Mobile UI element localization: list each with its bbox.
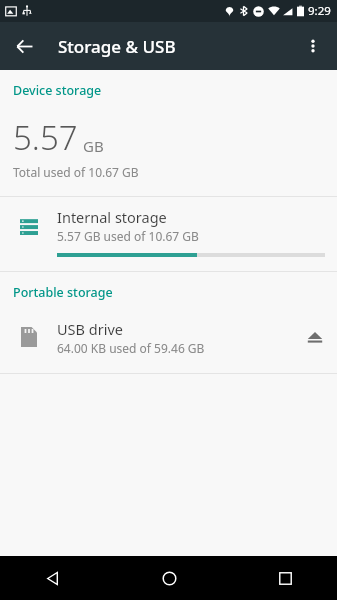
- button[interactable]: USB drive: [0, 313, 337, 373]
- staticText: Storage & USB: [58, 35, 176, 58]
- button[interactable]: Internal storage: [0, 197, 337, 271]
- button[interactable]: Recent apps: [263, 556, 307, 600]
- staticText: Total used of 10.67 GB: [13, 164, 139, 180]
- staticText: 5.57 GB used of 10.67 GB: [57, 228, 199, 244]
- staticText: 9:29: [308, 3, 331, 19]
- staticText: GB: [83, 136, 104, 156]
- staticText: Device storage: [13, 82, 102, 99]
- button[interactable]: More options: [289, 22, 337, 70]
- button[interactable]: Back: [30, 556, 74, 600]
- staticText: 5.57: [13, 115, 78, 160]
- button[interactable]: Home: [147, 556, 191, 600]
- staticText: Portable storage: [13, 284, 113, 301]
- staticText: Internal storage: [57, 207, 167, 227]
- staticText: 64.00 KB used of 59.46 GB: [57, 340, 205, 356]
- staticText: USB drive: [57, 319, 123, 339]
- button[interactable]: Navigate up: [0, 22, 48, 70]
- button[interactable]: Eject: [293, 315, 337, 359]
